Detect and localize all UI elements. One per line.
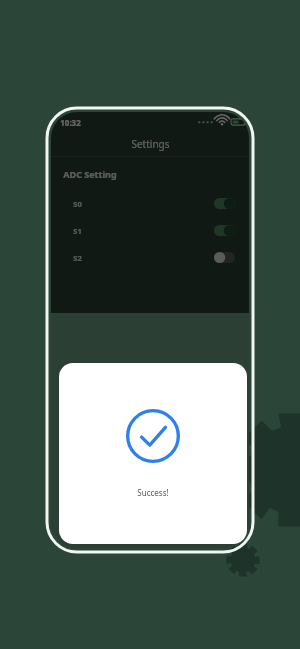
staticText: ADC Setting [63, 168, 117, 180]
button[interactable]: Success! [59, 363, 247, 544]
button[interactable] [132, 453, 169, 485]
button[interactable]: S2 [51, 244, 249, 271]
staticText: S1 [73, 226, 82, 236]
button[interactable]: S1 [51, 217, 249, 244]
staticText: Settings [131, 137, 170, 151]
staticText: 10:32 [60, 117, 81, 128]
staticText: Success! [137, 487, 169, 498]
button[interactable]: S0 [51, 190, 249, 217]
staticText: S2 [73, 253, 82, 263]
staticText: S0 [73, 199, 82, 209]
staticText: Current Setting [63, 425, 133, 437]
